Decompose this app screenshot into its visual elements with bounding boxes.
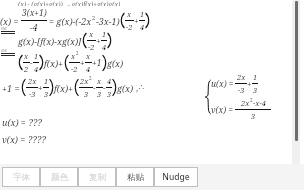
staticText: −2	[71, 64, 78, 74]
staticText: 粘贴	[127, 172, 144, 183]
staticText: 3	[251, 111, 256, 121]
staticText: 字体	[13, 172, 30, 183]
staticText: = g(x)−(−2x	[49, 15, 92, 27]
staticText: −2	[88, 42, 95, 52]
staticText: +1 =	[2, 82, 20, 94]
staticText: −3x−1)	[96, 15, 120, 27]
staticText: 1	[102, 29, 107, 39]
staticText: +	[247, 78, 252, 89]
staticText: x	[71, 51, 76, 61]
staticText: ,	[134, 82, 139, 93]
staticText: 2	[89, 75, 92, 81]
staticText: −3	[29, 89, 36, 99]
staticText: −	[30, 57, 33, 68]
button: 字体	[2, 167, 40, 187]
button: 颜色	[40, 167, 78, 187]
staticText: (x) =	[0, 15, 19, 27]
staticText: x	[86, 51, 91, 61]
staticText: 2	[92, 14, 96, 21]
staticText: +	[134, 15, 139, 26]
staticText: −	[93, 82, 96, 93]
staticText: v(x) = ????	[2, 133, 46, 145]
button: 复制	[78, 167, 116, 187]
staticText: 4	[34, 64, 39, 74]
staticText: −3	[238, 85, 245, 95]
staticText: 1	[140, 9, 145, 19]
staticText: 2	[76, 50, 79, 56]
staticText: −x−4	[253, 98, 266, 108]
staticText: g(x)	[117, 82, 134, 94]
staticText: +1	[92, 57, 102, 69]
staticText: (x) · (g(x)+g(x)) − g(x)f(x)+g(x)g(x)	[18, 0, 121, 6]
staticText: v(x) =	[211, 104, 234, 116]
staticText: +	[96, 35, 101, 46]
staticText: VNC	[1, 27, 8, 31]
staticText: f(x)+	[44, 57, 64, 69]
staticText: 3	[253, 85, 258, 95]
staticText: 3	[97, 89, 102, 99]
staticText: Nudge	[162, 171, 190, 183]
staticText: 408	[1, 49, 7, 53]
staticText: 2x	[80, 76, 89, 86]
staticText: x	[127, 9, 132, 19]
staticText: 3	[44, 89, 49, 99]
staticText: 2x	[237, 72, 246, 82]
staticText: 2x	[241, 98, 250, 108]
staticText: x	[89, 29, 94, 39]
staticText: u(x) = ???	[2, 116, 42, 128]
staticText: 2x	[28, 76, 37, 86]
staticText: u(x) =	[211, 78, 234, 90]
staticText: 2	[250, 97, 253, 103]
staticText: x	[24, 51, 29, 61]
staticText: g(x)	[107, 57, 124, 69]
staticText: 3	[107, 89, 112, 99]
staticText: 1	[253, 72, 258, 82]
staticText: 4	[107, 76, 112, 86]
staticText: 复制	[89, 172, 106, 183]
staticText: −	[103, 82, 106, 93]
staticText: 4	[140, 22, 145, 32]
button[interactable]: Nudge	[154, 167, 198, 187]
staticText: +	[80, 57, 85, 68]
staticText: +	[38, 82, 43, 93]
staticText: f(x)+	[54, 82, 74, 94]
staticText: 颜色	[51, 172, 68, 183]
staticText: 3(x+1)	[22, 7, 47, 19]
staticText: ∴	[139, 83, 145, 92]
staticText: 2	[24, 64, 29, 74]
staticText: 3	[84, 89, 89, 99]
staticText: −4	[30, 22, 38, 34]
staticText: 1	[44, 76, 49, 86]
staticText: x	[97, 76, 102, 86]
staticText: 4	[102, 42, 107, 52]
button[interactable]: 粘贴	[116, 167, 154, 187]
staticText: g(x)−[f(x)−xg(x)]	[18, 35, 82, 47]
other: Scroll	[292, 0, 300, 164]
staticText: −2	[126, 22, 133, 32]
staticText: 4	[86, 64, 91, 74]
staticText: 1	[34, 51, 39, 61]
